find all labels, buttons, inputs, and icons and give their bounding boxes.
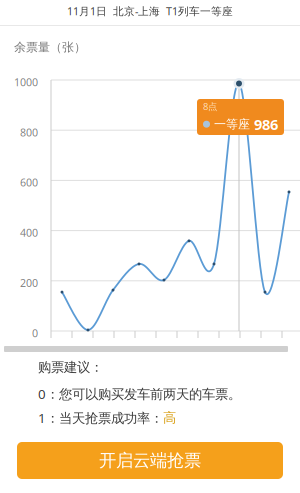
staticText: 1000 [14,75,38,89]
staticText: 11月1日 北京-上海 T1列车一等座 [67,4,233,18]
staticText: 开启云端抢票 [99,450,201,471]
staticText: 600 [20,175,38,190]
staticText: 一等座 [214,117,250,131]
staticText: 高 [163,410,176,426]
staticText: 0：您可以购买发车前两天的车票。 [38,385,241,403]
staticText: 800 [20,125,38,139]
staticText: 8点 [203,100,217,112]
staticText: 1：当天抢票成功率： [38,409,163,427]
staticText: 购票建议： [38,359,103,375]
staticText: 0 [32,326,38,340]
staticText: 986 [254,114,278,134]
staticText: 200 [20,276,38,290]
staticText: 余票量（张） [14,40,86,55]
staticText: 400 [20,226,38,240]
button[interactable]: 开启云端抢票 [17,442,283,479]
